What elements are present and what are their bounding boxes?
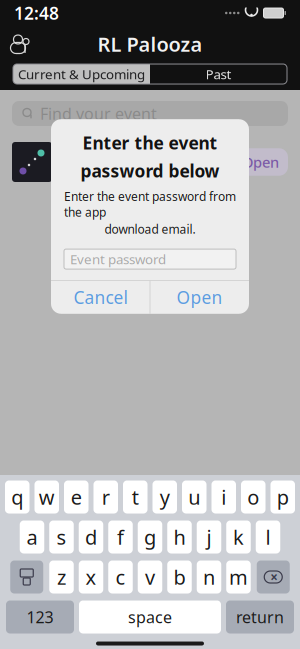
button[interactable]: s <box>49 520 74 553</box>
staticText: w <box>39 484 55 510</box>
staticText: space <box>128 606 172 628</box>
staticText: o <box>247 484 259 510</box>
button[interactable]: o <box>241 480 265 513</box>
button[interactable]: i <box>211 480 236 513</box>
button[interactable]: Delete <box>257 560 290 593</box>
staticText: h <box>173 524 185 550</box>
staticText: Past <box>205 65 231 83</box>
staticText: download email. <box>104 221 195 237</box>
staticText: p <box>277 484 289 510</box>
button[interactable]: c <box>108 560 133 593</box>
button[interactable]: h <box>167 520 192 553</box>
button[interactable]: p <box>270 480 295 513</box>
button[interactable]: return <box>226 600 294 633</box>
button[interactable]: z <box>49 560 74 593</box>
button[interactable]: j <box>197 520 221 553</box>
button[interactable]: k <box>226 520 251 553</box>
staticText: d <box>85 524 97 550</box>
button[interactable]: l <box>256 520 280 553</box>
staticText: x <box>85 564 96 590</box>
staticText: return <box>236 606 284 628</box>
button[interactable]: Account <box>0 27 40 61</box>
button[interactable]: v <box>138 560 162 593</box>
staticText: Open <box>177 286 223 309</box>
button[interactable]: Open <box>150 281 249 314</box>
button[interactable]: q <box>5 480 29 513</box>
staticText: l <box>265 524 270 550</box>
button[interactable]: r <box>93 480 118 513</box>
staticText: q <box>11 484 23 510</box>
staticText: i <box>221 484 226 510</box>
staticText: RL Palooza <box>60 141 143 162</box>
button[interactable]: Current & Upcoming <box>13 64 150 84</box>
staticText: s <box>56 524 66 550</box>
staticText: c <box>115 564 125 590</box>
staticText: v <box>145 564 155 590</box>
button[interactable]: m <box>226 560 251 593</box>
staticText: u <box>188 484 200 510</box>
staticText: m <box>229 564 248 590</box>
staticText: RL Palooza <box>97 31 202 57</box>
staticText: 123 <box>26 606 53 628</box>
button[interactable]: y <box>152 480 177 513</box>
staticText: Event password <box>70 250 166 268</box>
staticText: Jun 25 – Jun 28 <box>60 165 151 183</box>
button[interactable]: Cancel <box>51 281 150 314</box>
staticText: z <box>57 564 66 590</box>
button[interactable]: w <box>34 480 59 513</box>
button[interactable]: Open <box>233 148 288 176</box>
staticText: b <box>173 564 185 590</box>
staticText: g <box>144 524 156 550</box>
button[interactable]: a <box>20 520 44 553</box>
button[interactable]: n <box>197 560 221 593</box>
staticText: Open <box>242 152 279 172</box>
staticText: f <box>117 524 124 550</box>
staticText: j <box>206 524 211 550</box>
button[interactable]: 123 <box>6 600 74 633</box>
button[interactable]: e <box>64 480 88 513</box>
button[interactable]: t <box>123 480 147 513</box>
staticText: Cancel <box>73 286 127 309</box>
staticText: 12:48 <box>14 1 59 24</box>
button[interactable]: space <box>79 600 221 633</box>
button[interactable]: x <box>79 560 103 593</box>
staticText: a <box>26 524 37 550</box>
staticText: e <box>71 484 82 510</box>
staticText: y <box>160 484 170 510</box>
staticText: password below <box>80 159 219 182</box>
staticText: k <box>233 524 244 550</box>
button[interactable]: f <box>108 520 133 553</box>
staticText: Current & Upcoming <box>18 65 145 83</box>
staticText: t <box>132 484 139 510</box>
staticText: n <box>203 564 215 590</box>
staticText: r <box>102 484 110 510</box>
staticText: × <box>270 568 278 586</box>
button[interactable]: g <box>138 520 162 553</box>
button[interactable]: Shift <box>10 560 43 593</box>
button[interactable]: b <box>167 560 192 593</box>
button[interactable]: u <box>182 480 206 513</box>
staticText: Enter the event password from the app <box>64 188 236 220</box>
button[interactable]: Past <box>150 64 287 84</box>
button[interactable]: d <box>79 520 103 553</box>
staticText: Enter the event <box>82 131 217 154</box>
staticText: Find your event <box>40 103 157 124</box>
